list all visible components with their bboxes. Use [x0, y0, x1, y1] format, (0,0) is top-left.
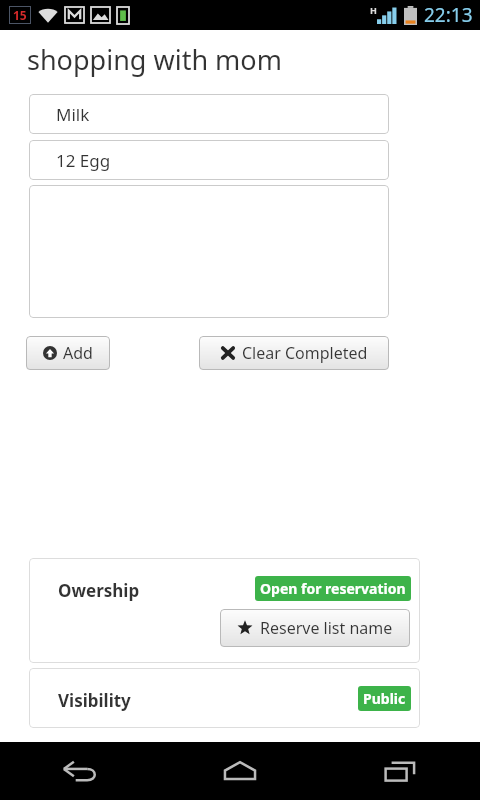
button[interactable]: Public	[358, 686, 411, 711]
staticText: Open for reservation	[260, 579, 406, 598]
button[interactable]: Open for reservation	[255, 576, 411, 601]
button[interactable]: Add	[26, 336, 110, 370]
button[interactable]: Milk	[29, 94, 389, 134]
staticText: shopping with mom	[27, 41, 282, 78]
button[interactable]: Back	[0, 742, 160, 800]
staticText: 15	[13, 7, 27, 23]
staticText: Reserve list name	[260, 617, 393, 639]
staticText: Clear Completed	[242, 342, 368, 364]
staticText: Owership	[58, 579, 140, 602]
staticText: Milk	[56, 103, 90, 126]
button[interactable]: Home	[160, 742, 320, 800]
button[interactable]: 12 Egg	[29, 140, 389, 180]
staticText: Visibility	[58, 689, 131, 712]
staticText: 12 Egg	[56, 149, 111, 172]
staticText: Add	[63, 342, 93, 364]
staticText: 22:13	[424, 2, 473, 28]
button[interactable]	[29, 185, 389, 318]
staticText: H	[370, 4, 377, 16]
button[interactable]: Clear Completed	[199, 336, 389, 370]
button[interactable]: Reserve list name	[220, 609, 410, 647]
staticText: Public	[363, 689, 406, 708]
button[interactable]: Recent apps	[320, 742, 480, 800]
